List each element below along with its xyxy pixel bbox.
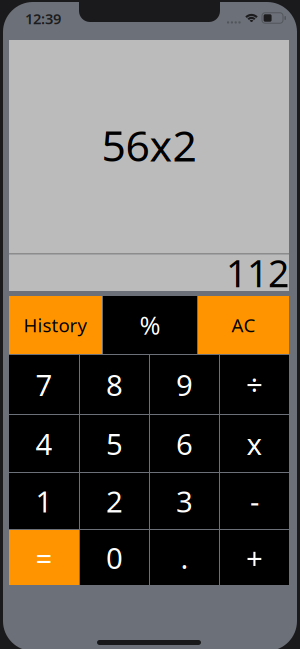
button[interactable]: 4 (9, 415, 79, 472)
staticText: . (180, 538, 188, 577)
button[interactable]: 2 (80, 473, 149, 529)
staticText: 6 (176, 424, 193, 463)
staticText: + (246, 538, 263, 577)
button[interactable]: 0 (80, 530, 149, 585)
button[interactable]: ÷ (220, 355, 289, 414)
staticText: % (139, 308, 160, 342)
staticText: x (246, 424, 262, 463)
button[interactable]: - (220, 473, 289, 529)
button[interactable]: History (9, 296, 102, 354)
staticText: 2 (106, 481, 123, 520)
staticText: History (23, 313, 87, 337)
staticText: 1 (35, 481, 52, 520)
staticText: 9 (176, 365, 193, 404)
button[interactable]: 9 (150, 355, 219, 414)
button[interactable]: 5 (80, 415, 149, 472)
button[interactable]: 6 (150, 415, 219, 472)
button[interactable]: x (220, 415, 289, 472)
button[interactable]: 1 (9, 473, 79, 529)
button[interactable]: 8 (80, 355, 149, 414)
staticText: AC (231, 313, 255, 337)
staticText: ÷ (246, 365, 263, 404)
staticText: 12:39 (25, 9, 61, 28)
button[interactable]: 3 (150, 473, 219, 529)
staticText: 56x2 (101, 117, 196, 173)
staticText: 0 (106, 538, 123, 577)
staticText: 3 (176, 481, 193, 520)
button[interactable]: = (9, 530, 79, 585)
staticText: 4 (35, 424, 52, 463)
staticText: 112 (226, 248, 289, 297)
staticText: 5 (106, 424, 123, 463)
button[interactable]: AC (198, 296, 289, 354)
button[interactable]: + (220, 530, 289, 585)
staticText: = (35, 538, 52, 577)
staticText: 7 (35, 365, 52, 404)
staticText: 8 (106, 365, 123, 404)
button[interactable]: % (103, 296, 197, 354)
button[interactable]: 7 (9, 355, 79, 414)
staticText: - (250, 481, 259, 520)
button[interactable]: . (150, 530, 219, 585)
